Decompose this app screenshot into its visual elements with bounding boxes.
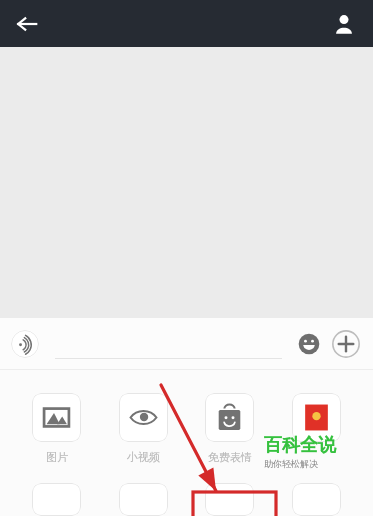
staticText: 免费表情 xyxy=(208,450,252,464)
staticText: 小视频 xyxy=(127,450,160,464)
button[interactable]: Attachment option xyxy=(192,483,267,516)
button[interactable]: Red packet xyxy=(279,393,354,450)
button[interactable]: Voice input xyxy=(11,330,39,358)
button[interactable]: Free stickers xyxy=(192,393,267,464)
button[interactable]: Contact profile xyxy=(325,5,363,43)
button[interactable]: Attachment option xyxy=(106,483,181,516)
button[interactable] xyxy=(55,329,282,359)
button[interactable]: Short video xyxy=(106,393,181,464)
button[interactable]: Emoji xyxy=(294,329,324,359)
button[interactable]: More functions xyxy=(330,328,362,360)
button[interactable]: Attachment option xyxy=(19,483,94,516)
button[interactable]: Attachment option xyxy=(279,483,354,516)
staticText: 助你轻松解决 xyxy=(264,458,318,469)
staticText: 百科全说 xyxy=(264,434,336,457)
button[interactable]: Photos xyxy=(19,393,94,464)
button[interactable]: Back xyxy=(8,5,46,43)
staticText: 图片 xyxy=(46,450,68,464)
